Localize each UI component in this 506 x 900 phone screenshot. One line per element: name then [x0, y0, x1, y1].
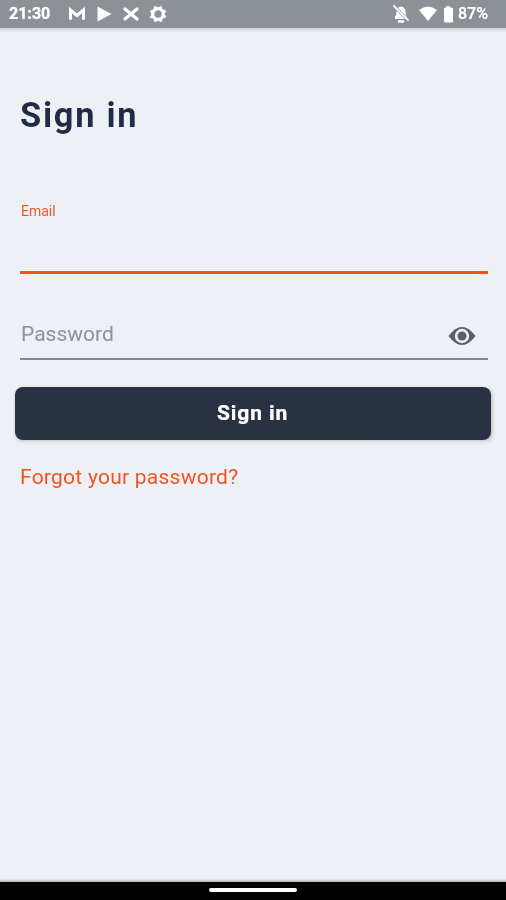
staticText: Sign in [20, 95, 139, 135]
button[interactable]: Email [0, 198, 506, 278]
button[interactable]: Password [0, 316, 506, 362]
staticText: 87% [458, 4, 488, 23]
staticText: Email [21, 203, 56, 219]
button[interactable] [446, 320, 478, 352]
staticText: Password [21, 322, 114, 347]
button[interactable]: Forgot your password? [10, 455, 249, 500]
staticText: Sign in [217, 401, 289, 426]
staticText: 21:30 [9, 4, 51, 23]
button[interactable]: Sign in [15, 387, 491, 440]
staticText: Forgot your password? [20, 465, 239, 490]
